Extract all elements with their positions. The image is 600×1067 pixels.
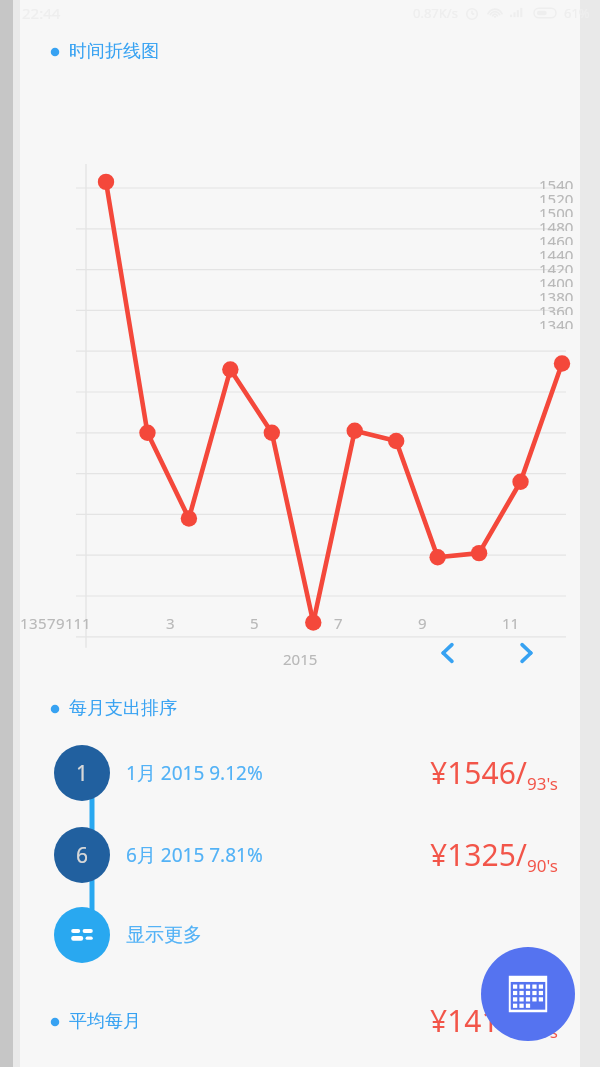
staticText: 6月 2015 7.81% bbox=[126, 842, 263, 868]
staticText: 每月支出排序 bbox=[69, 697, 177, 720]
staticText: 3 bbox=[166, 613, 175, 633]
button[interactable]: 1 bbox=[20, 732, 580, 814]
staticText: 显示更多 bbox=[126, 923, 202, 947]
staticText: 6 bbox=[76, 841, 89, 870]
staticText: 1520 bbox=[539, 189, 574, 203]
button[interactable]: Next bbox=[500, 627, 552, 679]
staticText: 1420 bbox=[539, 259, 574, 273]
staticText: 7 bbox=[334, 613, 343, 633]
button[interactable]: 显示更多 bbox=[54, 896, 558, 974]
staticText: 11 bbox=[65, 613, 83, 633]
staticText: 1 bbox=[20, 613, 29, 633]
staticText: 1500 bbox=[539, 203, 574, 217]
staticText: 61% bbox=[564, 4, 590, 22]
staticText: 平均每月 bbox=[69, 1010, 141, 1033]
staticText: 2015 bbox=[283, 649, 318, 669]
staticText: 3 bbox=[29, 613, 38, 633]
staticText: 1360 bbox=[539, 301, 574, 315]
button[interactable]: 6 bbox=[20, 814, 580, 896]
staticText: 1440 bbox=[539, 245, 574, 259]
staticText: 7 bbox=[47, 613, 56, 633]
staticText: 时间折线图 bbox=[69, 40, 159, 63]
staticText: ¥1413/91's bbox=[430, 1000, 558, 1043]
button[interactable]: 平均每月 bbox=[50, 1000, 558, 1043]
staticText: 1480 bbox=[539, 217, 574, 231]
staticText: 1460 bbox=[539, 231, 574, 245]
button[interactable]: Previous bbox=[422, 627, 474, 679]
staticText: 1400 bbox=[539, 273, 574, 287]
staticText: 1月 2015 9.12% bbox=[126, 760, 263, 786]
staticText: 0.87K/s bbox=[413, 4, 458, 22]
staticText: ¥1325/90's bbox=[430, 834, 558, 877]
staticText: 1 bbox=[76, 759, 89, 788]
staticText: 11 bbox=[502, 613, 520, 633]
staticText: 9 bbox=[418, 613, 427, 633]
staticText: ¥1546/93's bbox=[430, 752, 558, 795]
staticText: 5 bbox=[250, 613, 259, 633]
staticText: 1540 bbox=[539, 175, 574, 189]
staticText: 5 bbox=[38, 613, 47, 633]
button[interactable]: Calendar bbox=[481, 947, 575, 1041]
staticText: 9 bbox=[56, 613, 65, 633]
staticText: 1 bbox=[82, 613, 91, 633]
staticText: 1380 bbox=[539, 287, 574, 301]
staticText: 1340 bbox=[539, 315, 574, 329]
staticText: 22:44 bbox=[22, 3, 61, 23]
